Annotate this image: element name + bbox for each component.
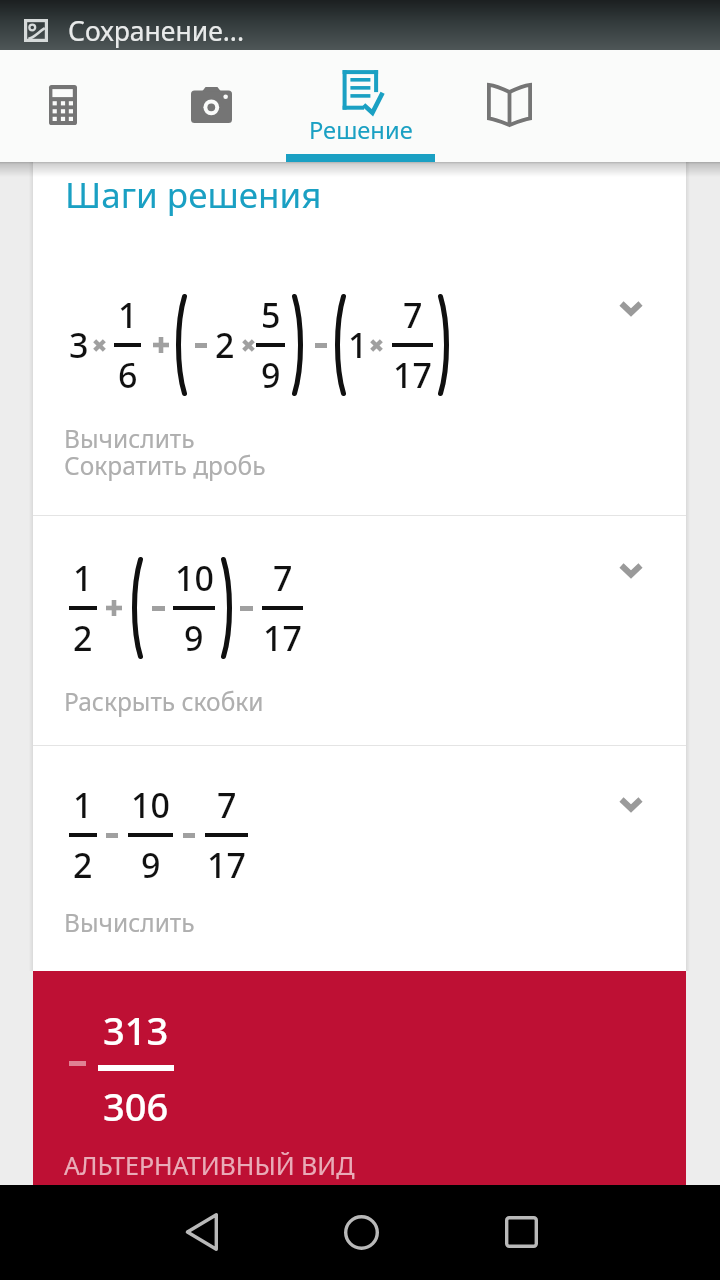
staticText: 1	[73, 782, 93, 828]
button[interactable]: Recents	[481, 1192, 561, 1272]
staticText: 2	[73, 842, 93, 888]
button[interactable]: Calculator	[0, 50, 137, 162]
staticText: Сохранение...	[68, 13, 245, 49]
button[interactable]: Back	[161, 1192, 241, 1272]
staticText: 17	[393, 352, 432, 398]
staticText: 10	[175, 555, 214, 601]
staticText: 9	[261, 352, 281, 398]
button[interactable]	[33, 971, 686, 1185]
staticText: 7	[403, 292, 423, 338]
button[interactable]	[33, 241, 686, 415]
staticText: 6	[118, 352, 138, 398]
staticText: 1	[73, 555, 93, 601]
staticText: АЛЬТЕРНАТИВНЫЙ ВИД	[64, 1148, 355, 1182]
button[interactable]: Expand	[605, 544, 657, 596]
button[interactable]: Camera	[137, 50, 286, 162]
button[interactable]: Expand	[605, 282, 657, 334]
staticText: Вычислить	[64, 906, 195, 939]
staticText: 313	[103, 1004, 169, 1056]
staticText: Вычислить	[64, 422, 195, 455]
staticText: 9	[184, 615, 204, 661]
staticText: 2	[215, 322, 235, 368]
button[interactable]: Home	[321, 1192, 401, 1272]
staticText: 2	[73, 615, 93, 661]
staticText: 10	[131, 782, 170, 828]
button[interactable]: Book	[435, 50, 584, 162]
staticText: 3	[69, 322, 89, 368]
button[interactable]	[33, 746, 686, 924]
staticText: 1	[348, 322, 368, 368]
button[interactable]: Expand	[605, 778, 657, 830]
staticText: 9	[141, 842, 161, 888]
staticText: 7	[217, 782, 237, 828]
staticText: Сократить дробь	[64, 449, 266, 482]
staticText: Решение	[309, 114, 413, 146]
staticText: 17	[263, 615, 302, 661]
staticText: 7	[273, 555, 293, 601]
staticText: 5	[261, 292, 281, 338]
staticText: Раскрыть скобки	[64, 685, 264, 718]
staticText: 17	[207, 842, 246, 888]
staticText: Шаги решения	[65, 171, 322, 219]
staticText: 1	[118, 292, 138, 338]
button[interactable]: Решение	[286, 50, 435, 162]
staticText: 306	[103, 1080, 169, 1122]
button[interactable]	[33, 516, 686, 694]
